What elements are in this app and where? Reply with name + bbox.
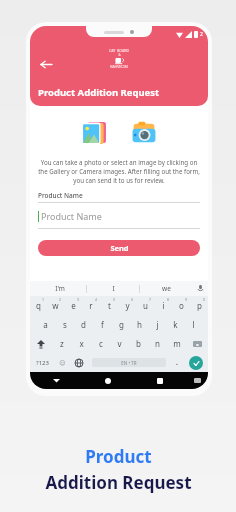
staticText: t — [108, 300, 111, 311]
button[interactable]: x — [72, 334, 91, 353]
button[interactable]: z — [52, 334, 72, 353]
staticText: j — [156, 319, 159, 330]
button[interactable]: l — [184, 315, 202, 334]
button[interactable]: Gallery — [77, 116, 111, 150]
button[interactable]: Recents — [134, 372, 186, 389]
staticText: 0 — [203, 297, 206, 302]
button[interactable]: m — [167, 334, 186, 353]
staticText: Send — [110, 243, 129, 253]
button[interactable]: Done — [184, 353, 208, 372]
staticText: n — [155, 338, 160, 349]
button[interactable]: w — [47, 296, 64, 315]
staticText: f — [101, 319, 104, 330]
button[interactable]: e — [64, 296, 82, 315]
button[interactable]: EN • TR — [92, 358, 166, 367]
button[interactable]: h — [130, 315, 148, 334]
button[interactable]: u — [136, 296, 154, 315]
button[interactable]: o — [172, 296, 190, 315]
button[interactable]: j — [148, 315, 166, 334]
staticText: z — [60, 338, 64, 349]
button[interactable]: g — [112, 315, 130, 334]
button[interactable]: f — [93, 315, 112, 334]
staticText: o — [179, 300, 184, 311]
staticText: CAY BOARD — [109, 48, 129, 53]
staticText: a — [43, 319, 48, 330]
staticText: EN • TR — [121, 360, 137, 366]
staticText: 1 — [42, 297, 45, 302]
staticText: e — [71, 300, 76, 311]
staticText: h — [137, 319, 142, 330]
button[interactable]: y — [118, 296, 136, 315]
staticText: c — [99, 338, 103, 349]
button[interactable]: we — [140, 281, 192, 296]
staticText: g — [119, 319, 124, 330]
staticText: x — [196, 342, 199, 347]
button[interactable]: Backspace — [186, 334, 208, 353]
staticText: Product Addition Request — [38, 86, 160, 99]
button[interactable]: s — [55, 315, 74, 334]
staticText: 2 — [59, 297, 62, 302]
staticText: 4 — [95, 297, 98, 302]
staticText: 3 — [77, 297, 80, 302]
button[interactable]: p — [190, 296, 208, 315]
button[interactable]: b — [129, 334, 148, 353]
button[interactable]: Back — [30, 372, 82, 389]
button[interactable]: i — [154, 296, 172, 315]
button[interactable]: Home — [82, 372, 134, 389]
staticText: i — [162, 300, 165, 311]
staticText: You can take a photo or select an image … — [38, 158, 200, 185]
staticText: x — [79, 338, 84, 349]
staticText: KAHVECIM — [110, 64, 128, 69]
staticText: ☺ — [59, 359, 66, 366]
button[interactable]: c — [91, 334, 110, 353]
button[interactable]: Back — [36, 54, 56, 74]
staticText: w — [52, 300, 59, 311]
staticText: s — [63, 319, 67, 330]
staticText: I'm — [55, 284, 65, 293]
button[interactable]: Keyboard — [186, 372, 208, 389]
staticText: m — [173, 338, 181, 349]
button[interactable]: ?123 — [30, 353, 54, 372]
staticText: r — [89, 300, 93, 311]
staticText: u — [143, 300, 148, 311]
button[interactable]: q — [30, 296, 47, 315]
staticText: Product — [85, 445, 152, 468]
staticText: v — [117, 338, 122, 349]
staticText: 2 — [200, 31, 203, 38]
button[interactable]: k — [166, 315, 184, 334]
button[interactable]: d — [74, 315, 93, 334]
staticText: 8 — [167, 297, 170, 302]
button[interactable]: Voice input — [192, 281, 208, 296]
staticText: . — [176, 358, 178, 368]
staticText: k — [173, 319, 178, 330]
staticText: & — [118, 53, 121, 57]
button[interactable]: t — [100, 296, 118, 315]
button[interactable]: a — [36, 315, 55, 334]
button[interactable]: Change language — [70, 353, 88, 372]
staticText: b — [136, 338, 141, 349]
staticText: Product Name — [38, 191, 83, 200]
button[interactable]: I'm — [34, 281, 86, 296]
button[interactable]: Shift — [30, 334, 52, 353]
button[interactable]: . — [170, 353, 184, 372]
staticText: 6 — [131, 297, 134, 302]
staticText: d — [81, 319, 86, 330]
staticText: l — [192, 319, 195, 330]
button[interactable]: I — [87, 281, 139, 296]
staticText: we — [162, 284, 171, 293]
button[interactable]: Emoji — [54, 353, 70, 372]
button[interactable]: Send — [38, 240, 200, 256]
button[interactable]: v — [110, 334, 129, 353]
button[interactable]: r — [82, 296, 100, 315]
staticText: q — [36, 300, 41, 311]
staticText: Addition Request — [45, 471, 192, 494]
staticText: ?123 — [36, 359, 49, 367]
staticText: y — [125, 300, 130, 311]
button[interactable]: n — [148, 334, 167, 353]
staticText: I — [112, 284, 115, 293]
staticText: p — [197, 300, 202, 311]
staticText: 9 — [185, 297, 188, 302]
staticText: 5 — [113, 297, 116, 302]
button[interactable]: Camera — [127, 116, 161, 150]
staticText: 7 — [149, 297, 152, 302]
